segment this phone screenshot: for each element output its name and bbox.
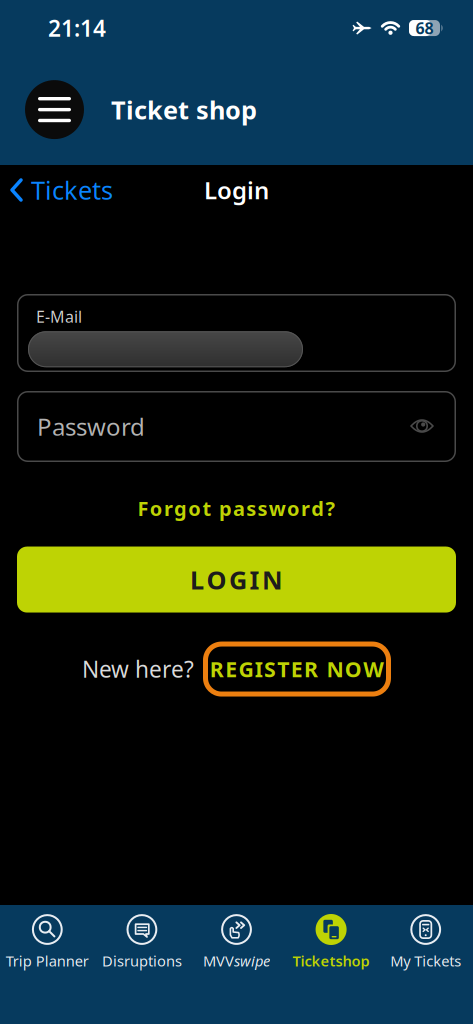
staticText: 21:14 bbox=[48, 13, 106, 43]
staticText: s bbox=[246, 495, 256, 522]
staticText: g bbox=[174, 495, 187, 522]
staticText: swipe bbox=[234, 951, 270, 970]
staticText: o bbox=[150, 495, 163, 522]
button[interactable]: MVV bbox=[189, 914, 284, 970]
staticText: Login bbox=[204, 174, 269, 206]
staticText: E-Mail bbox=[36, 306, 82, 327]
staticText: o bbox=[287, 495, 300, 522]
staticText: New here? bbox=[82, 654, 194, 684]
button[interactable]: Disruptions bbox=[95, 914, 189, 970]
staticText: I bbox=[249, 563, 259, 596]
staticText: Tickets bbox=[31, 173, 113, 207]
staticText: N bbox=[262, 563, 283, 596]
staticText: MVV bbox=[203, 951, 234, 970]
staticText: G bbox=[238, 655, 253, 683]
staticText: E bbox=[225, 655, 237, 683]
staticText: O bbox=[206, 563, 226, 596]
staticText: G bbox=[229, 563, 247, 596]
staticText: E bbox=[291, 655, 303, 683]
staticText: Ticket shop bbox=[111, 93, 257, 126]
staticText: a bbox=[233, 495, 245, 522]
staticText: O bbox=[345, 655, 362, 683]
staticText: N bbox=[326, 655, 343, 683]
staticText: r bbox=[164, 495, 173, 522]
staticText: S bbox=[264, 655, 276, 683]
staticText: L bbox=[190, 563, 204, 596]
button[interactable]: L bbox=[17, 547, 456, 613]
staticText: w bbox=[269, 495, 286, 522]
button[interactable]: R bbox=[203, 642, 391, 697]
staticText: Disruptions bbox=[102, 951, 182, 970]
staticText: My Tickets bbox=[390, 951, 461, 970]
button[interactable]: Trip Planner bbox=[0, 914, 95, 970]
button[interactable]: Password bbox=[17, 391, 456, 462]
button[interactable]: F bbox=[137, 495, 335, 522]
staticText: F bbox=[137, 495, 148, 522]
staticText: Password bbox=[37, 411, 145, 442]
staticText: o bbox=[188, 495, 201, 522]
staticText: r bbox=[301, 495, 310, 522]
staticText: d bbox=[311, 495, 324, 522]
staticText: R bbox=[304, 655, 318, 683]
button[interactable]: Tickets bbox=[10, 173, 113, 207]
button[interactable]: My Tickets bbox=[378, 914, 473, 970]
staticText: s bbox=[257, 495, 267, 522]
staticText: 68 bbox=[415, 17, 433, 39]
staticText: I bbox=[255, 655, 263, 683]
staticText: ? bbox=[325, 495, 335, 522]
button[interactable] bbox=[25, 80, 84, 139]
staticText: Trip Planner bbox=[6, 951, 89, 970]
staticText: p bbox=[219, 495, 232, 522]
staticText: W bbox=[363, 655, 384, 683]
button[interactable]: Ticketshop bbox=[284, 914, 378, 970]
button[interactable]: E-Mail bbox=[17, 294, 456, 372]
staticText: Ticketshop bbox=[293, 951, 370, 970]
staticText: R bbox=[210, 655, 224, 683]
staticText: t bbox=[202, 495, 211, 522]
staticText: T bbox=[277, 655, 289, 683]
